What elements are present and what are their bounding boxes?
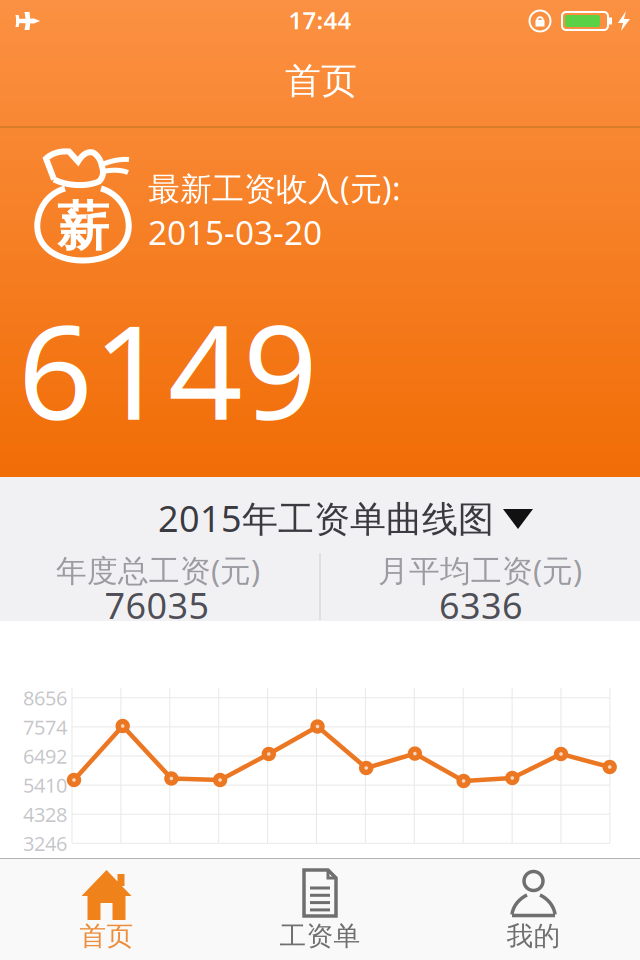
staticText: 月平均工资(元) (378, 550, 582, 590)
staticText: 6492 (23, 743, 67, 769)
staticText: 17:44 (288, 4, 351, 36)
button[interactable]: 工资单 (213, 858, 426, 960)
staticText: 首页 (79, 920, 133, 952)
staticText: 7574 (23, 714, 67, 740)
staticText: 4328 (23, 801, 67, 827)
staticText: 6149 (18, 282, 318, 456)
staticText: 5410 (23, 772, 67, 798)
button[interactable]: 首页 (0, 858, 213, 960)
staticText: 2015-03-20 (148, 210, 322, 254)
staticText: 薪 (57, 195, 109, 259)
staticText: 76035 (104, 581, 209, 629)
staticText: 2015年工资单曲线图 (158, 494, 494, 542)
staticText: 6336 (439, 581, 523, 629)
staticText: 8656 (23, 684, 67, 711)
staticText: 首页 (285, 59, 357, 103)
staticText: 工资单 (279, 920, 360, 952)
staticText: 我的 (506, 920, 560, 952)
staticText: 年度总工资(元) (56, 550, 260, 590)
staticText: 3246 (23, 830, 67, 857)
button[interactable]: 我的 (427, 858, 640, 960)
staticText: 最新工资收入(元): (148, 167, 401, 209)
